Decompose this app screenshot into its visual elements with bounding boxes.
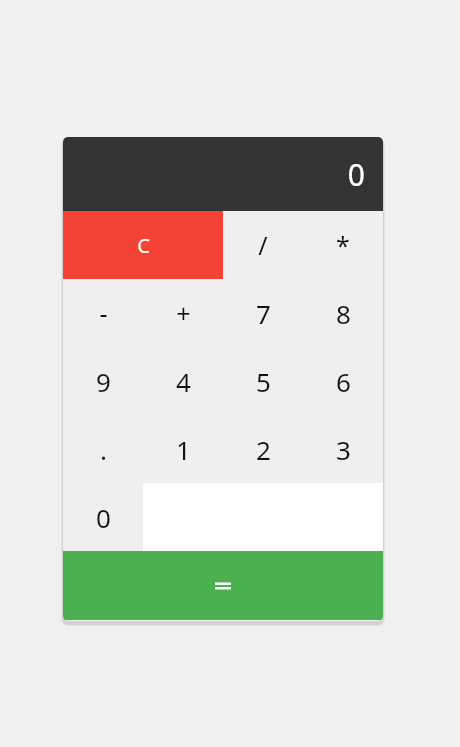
button[interactable]: * — [303, 211, 383, 279]
button[interactable]: 4 — [143, 347, 223, 415]
staticText: / — [258, 228, 268, 262]
button[interactable]: + — [143, 279, 223, 347]
staticText: * — [336, 228, 350, 262]
staticText: 6 — [336, 364, 351, 399]
staticText: 7 — [256, 296, 271, 331]
button[interactable]: 0 — [63, 483, 143, 551]
button[interactable]: 1 — [143, 415, 223, 483]
button[interactable]: 8 — [303, 279, 383, 347]
staticText: . — [100, 432, 107, 467]
staticText: C — [137, 232, 150, 259]
button[interactable]: 9 — [63, 347, 143, 415]
button[interactable]: 7 — [223, 279, 303, 347]
staticText: 0 — [347, 154, 365, 195]
staticText: 5 — [256, 364, 271, 399]
button[interactable]: - — [63, 279, 143, 347]
button[interactable]: 2 — [223, 415, 303, 483]
button[interactable]: C — [63, 211, 223, 279]
staticText: 3 — [336, 432, 351, 467]
staticText: 1 — [176, 432, 191, 467]
staticText: 4 — [176, 364, 191, 399]
staticText: - — [99, 296, 108, 330]
staticText: + — [176, 296, 191, 330]
button[interactable]: Equals — [63, 551, 383, 620]
staticText: 8 — [336, 296, 351, 331]
button[interactable]: / — [223, 211, 303, 279]
staticText: 9 — [96, 364, 111, 399]
button[interactable]: . — [63, 415, 143, 483]
button[interactable]: 6 — [303, 347, 383, 415]
button[interactable]: 3 — [303, 415, 383, 483]
staticText: 0 — [96, 500, 111, 535]
button[interactable]: 5 — [223, 347, 303, 415]
staticText: 2 — [256, 432, 271, 467]
